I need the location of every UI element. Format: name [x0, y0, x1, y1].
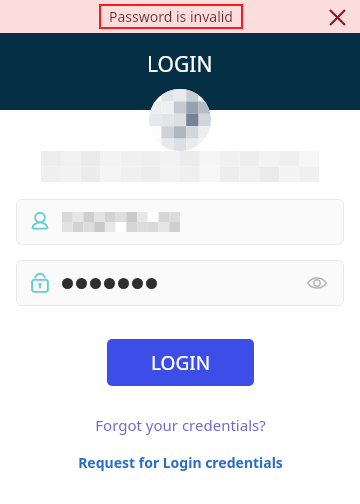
staticText: Forgot your credentials? — [95, 415, 266, 435]
button[interactable]: Forgot your credentials? — [89, 413, 272, 437]
button[interactable]: Close — [324, 4, 350, 30]
button[interactable]: Request for Login credentials — [72, 451, 289, 474]
button[interactable]: LOGIN — [107, 339, 254, 386]
button[interactable]: Show password — [303, 269, 331, 297]
staticText: Password is invalid — [109, 7, 233, 26]
button[interactable]: Show password — [16, 260, 344, 306]
button[interactable] — [16, 199, 344, 245]
staticText: LOGIN — [147, 50, 213, 79]
staticText: LOGIN — [151, 350, 211, 376]
staticText: Request for Login credentials — [78, 453, 283, 472]
